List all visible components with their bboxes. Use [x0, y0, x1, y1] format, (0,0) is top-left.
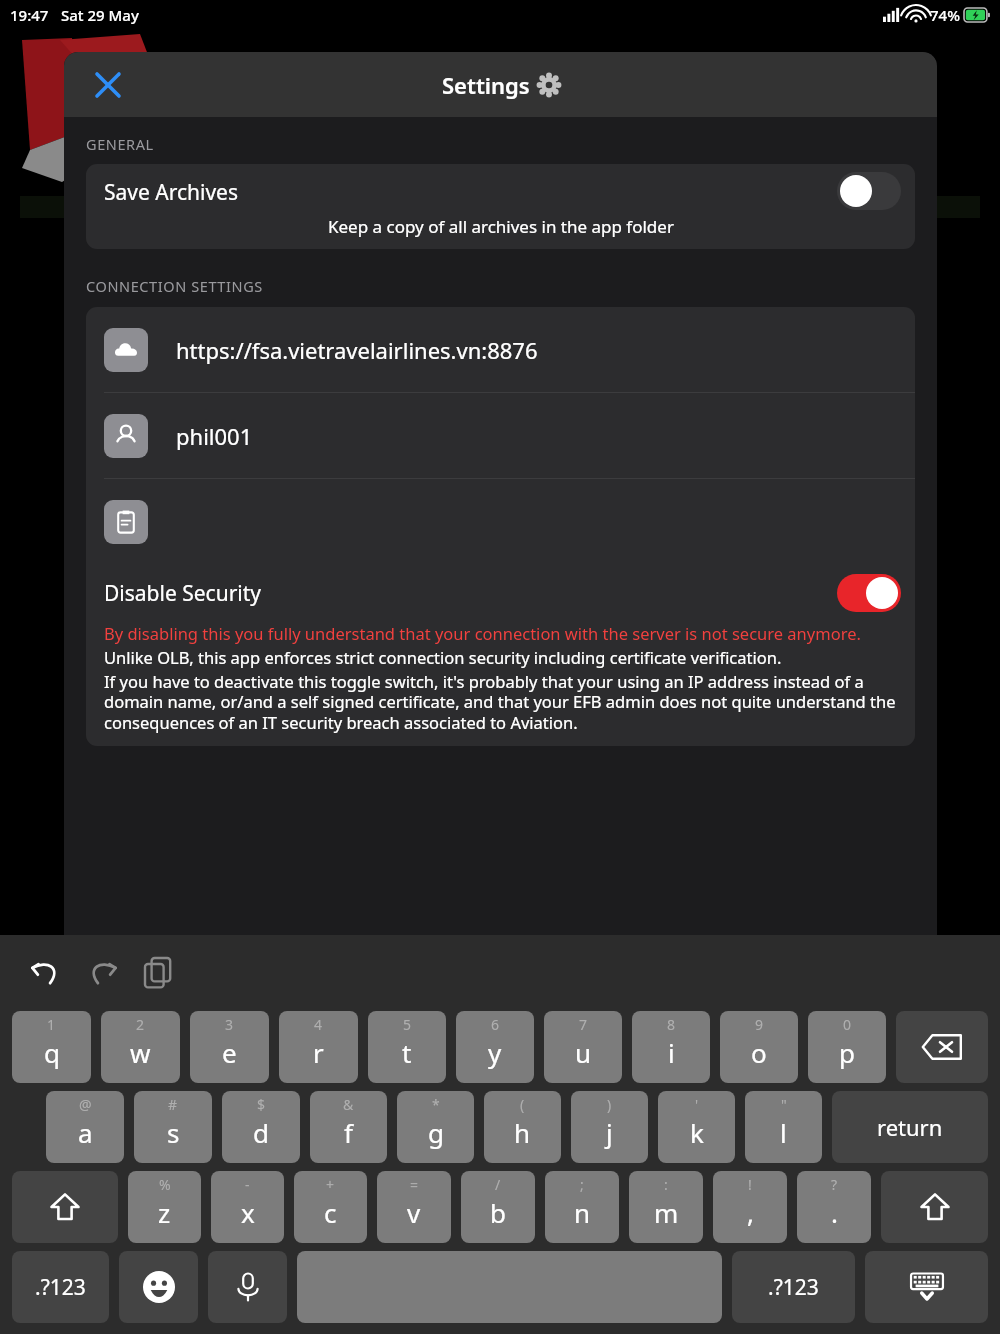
- button[interactable]: .?123: [12, 1251, 109, 1323]
- staticText: %: [159, 1175, 171, 1194]
- staticText: m: [654, 1195, 679, 1230]
- staticText: Disable Security: [104, 579, 262, 608]
- button[interactable]: Undo: [22, 949, 70, 997]
- staticText: z: [158, 1195, 171, 1230]
- staticText: y: [488, 1035, 502, 1070]
- button[interactable]: +: [294, 1171, 367, 1243]
- staticText: :: [664, 1175, 668, 1194]
- staticText: CONNECTION SETTINGS: [86, 276, 263, 296]
- button[interactable]: :: [629, 1171, 703, 1243]
- button[interactable]: Close: [86, 63, 130, 107]
- staticText: t: [402, 1035, 412, 1070]
- button[interactable]: Emoji: [119, 1251, 198, 1323]
- button[interactable]: %: [128, 1171, 201, 1243]
- button[interactable]: 0: [808, 1011, 886, 1083]
- button[interactable]: Shift: [12, 1171, 118, 1243]
- button[interactable]: $: [222, 1091, 300, 1163]
- button[interactable]: ): [571, 1091, 648, 1163]
- staticText: 4: [314, 1015, 323, 1034]
- button[interactable]: /: [461, 1171, 535, 1243]
- staticText: 2: [136, 1015, 145, 1034]
- button[interactable]: ': [658, 1091, 735, 1163]
- staticText: b: [490, 1195, 506, 1230]
- staticText: -: [245, 1175, 250, 1194]
- button[interactable]: return: [832, 1091, 988, 1163]
- staticText: Unlike OLB, this app enforces strict con…: [104, 646, 782, 668]
- button[interactable]: !: [713, 1171, 787, 1243]
- staticText: (: [520, 1095, 525, 1114]
- staticText: ': [695, 1095, 699, 1114]
- button[interactable]: @: [46, 1091, 124, 1163]
- button[interactable]: 8: [632, 1011, 710, 1083]
- staticText: 6: [491, 1015, 500, 1034]
- staticText: h: [514, 1115, 531, 1150]
- staticText: a: [78, 1115, 93, 1150]
- button[interactable]: -: [211, 1171, 284, 1243]
- button[interactable]: phil001: [86, 393, 915, 478]
- button[interactable]: ": [745, 1091, 822, 1163]
- staticText: =: [410, 1175, 419, 1194]
- staticText: 8: [667, 1015, 676, 1034]
- staticText: 74%: [930, 5, 960, 25]
- button[interactable]: https://fsa.vietravelairlines.vn:8876: [86, 307, 915, 392]
- staticText: 19:47: [10, 5, 49, 25]
- button[interactable]: 5: [368, 1011, 446, 1083]
- button[interactable]: 2: [101, 1011, 180, 1083]
- button[interactable]: Disable Security: [86, 564, 915, 622]
- staticText: https://fsa.vietravelairlines.vn:8876: [176, 335, 538, 365]
- staticText: ): [607, 1095, 612, 1114]
- staticText: By disabling this you fully understand t…: [104, 622, 861, 644]
- button[interactable]: [86, 479, 915, 564]
- staticText: 5: [403, 1015, 412, 1034]
- button[interactable]: *: [397, 1091, 474, 1163]
- button[interactable]: =: [377, 1171, 451, 1243]
- staticText: GENERAL: [86, 134, 154, 154]
- staticText: p: [839, 1035, 855, 1070]
- button[interactable]: Space: [297, 1251, 722, 1323]
- button[interactable]: Toggle on: [837, 574, 901, 612]
- staticText: d: [253, 1115, 269, 1150]
- button[interactable]: 1: [12, 1011, 91, 1083]
- button[interactable]: ?: [797, 1171, 871, 1243]
- button[interactable]: Hide keyboard: [865, 1251, 988, 1323]
- button[interactable]: .?123: [732, 1251, 855, 1323]
- button[interactable]: 3: [190, 1011, 269, 1083]
- staticText: $: [257, 1095, 266, 1114]
- staticText: c: [324, 1195, 337, 1230]
- staticText: +: [326, 1175, 335, 1194]
- staticText: Sat 29 May: [61, 5, 139, 25]
- staticText: i: [668, 1035, 675, 1070]
- button[interactable]: Redo: [78, 949, 126, 997]
- button[interactable]: 7: [544, 1011, 622, 1083]
- button[interactable]: Save Archives: [86, 164, 915, 249]
- staticText: @: [79, 1095, 92, 1114]
- button[interactable]: &: [310, 1091, 387, 1163]
- button[interactable]: 4: [279, 1011, 358, 1083]
- staticText: 1: [47, 1015, 56, 1034]
- staticText: s: [167, 1115, 180, 1150]
- staticText: &: [343, 1095, 354, 1114]
- staticText: 7: [579, 1015, 588, 1034]
- staticText: If you have to deactivate this toggle sw…: [104, 670, 897, 734]
- button[interactable]: (: [484, 1091, 561, 1163]
- staticText: r: [313, 1035, 324, 1070]
- button[interactable]: ;: [545, 1171, 619, 1243]
- staticText: *: [432, 1095, 440, 1114]
- button[interactable]: Shift: [881, 1171, 988, 1243]
- staticText: ,: [747, 1195, 754, 1230]
- button[interactable]: 9: [720, 1011, 798, 1083]
- staticText: .?123: [35, 1273, 86, 1302]
- button[interactable]: Paste: [136, 949, 184, 997]
- button[interactable]: Backspace: [896, 1011, 988, 1083]
- button[interactable]: 6: [456, 1011, 534, 1083]
- staticText: return: [877, 1112, 943, 1142]
- button[interactable]: Dictation: [208, 1251, 287, 1323]
- button[interactable]: #: [134, 1091, 212, 1163]
- staticText: w: [130, 1035, 151, 1070]
- staticText: g: [428, 1115, 444, 1150]
- staticText: !: [748, 1175, 752, 1194]
- staticText: u: [575, 1035, 592, 1070]
- button[interactable]: Toggle off: [837, 172, 901, 210]
- staticText: Settings: [442, 70, 530, 100]
- staticText: 3: [225, 1015, 234, 1034]
